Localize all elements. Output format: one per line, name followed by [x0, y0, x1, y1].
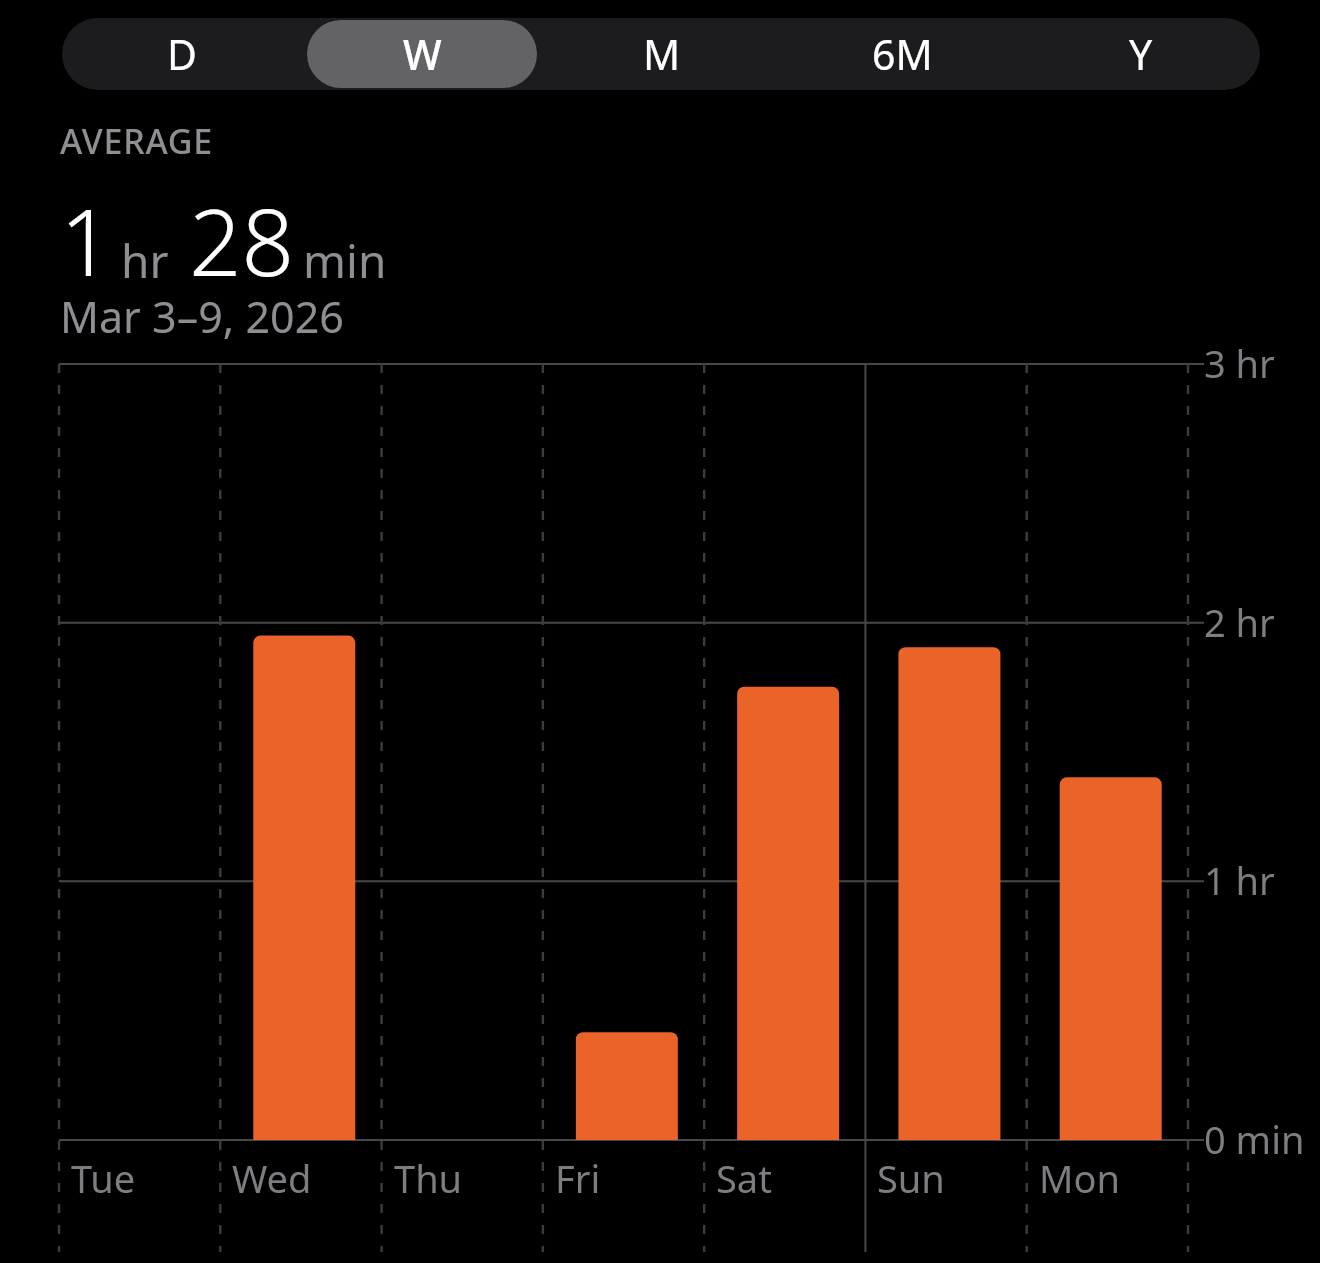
staticText: Wed	[232, 1152, 312, 1204]
staticText: AVERAGE	[60, 118, 214, 164]
button[interactable]: W	[302, 18, 542, 90]
staticText: min	[303, 229, 387, 292]
staticText: W	[403, 26, 442, 82]
staticText: 2 hr	[1204, 596, 1275, 648]
staticText: Y	[1129, 26, 1153, 82]
staticText: Thu	[394, 1152, 463, 1204]
staticText: Fri	[555, 1152, 601, 1204]
staticText: Mon	[1039, 1152, 1120, 1204]
staticText: 3 hr	[1204, 337, 1275, 389]
staticText: 28	[189, 178, 295, 303]
staticText: 6M	[872, 26, 933, 82]
staticText: Tue	[71, 1152, 136, 1204]
staticText: hr	[121, 229, 169, 292]
staticText: Sat	[716, 1152, 772, 1204]
staticText: Sun	[877, 1152, 945, 1204]
staticText: D	[167, 26, 197, 82]
staticText: Mar 3–9, 2026	[60, 287, 344, 346]
button[interactable]: M	[542, 18, 782, 90]
staticText: M	[643, 26, 681, 82]
button[interactable]: Y	[1022, 18, 1260, 90]
staticText: 1	[60, 178, 113, 303]
staticText: 0 min	[1204, 1113, 1305, 1165]
button[interactable]: D	[62, 18, 302, 90]
staticText: 1 hr	[1204, 854, 1275, 906]
button[interactable]: 6M	[782, 18, 1022, 90]
